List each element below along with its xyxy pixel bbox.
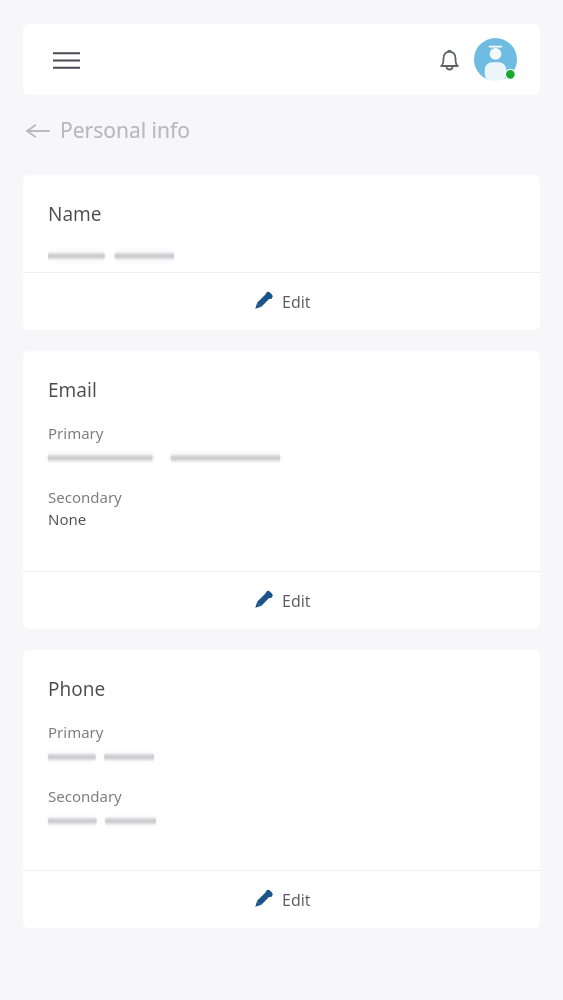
staticText: Personal info <box>60 116 190 145</box>
staticText: Secondary <box>48 786 122 806</box>
staticText: None <box>48 509 87 529</box>
button[interactable]: Personal info <box>26 116 190 145</box>
button[interactable]: Edit <box>23 572 540 629</box>
button[interactable]: Notifications <box>427 38 471 82</box>
button[interactable]: Menu <box>46 40 86 80</box>
staticText: Email <box>48 377 97 403</box>
button[interactable]: Edit <box>23 273 540 330</box>
staticText: Primary <box>48 423 104 443</box>
staticText: Edit <box>282 889 311 911</box>
staticText: Edit <box>282 291 311 313</box>
staticText: Edit <box>282 590 311 612</box>
button[interactable]: Edit <box>23 871 540 928</box>
staticText: Primary <box>48 722 104 742</box>
staticText: Name <box>48 201 102 227</box>
staticText: Secondary <box>48 487 122 507</box>
button[interactable]: Profile <box>473 37 518 82</box>
staticText: Phone <box>48 676 106 702</box>
